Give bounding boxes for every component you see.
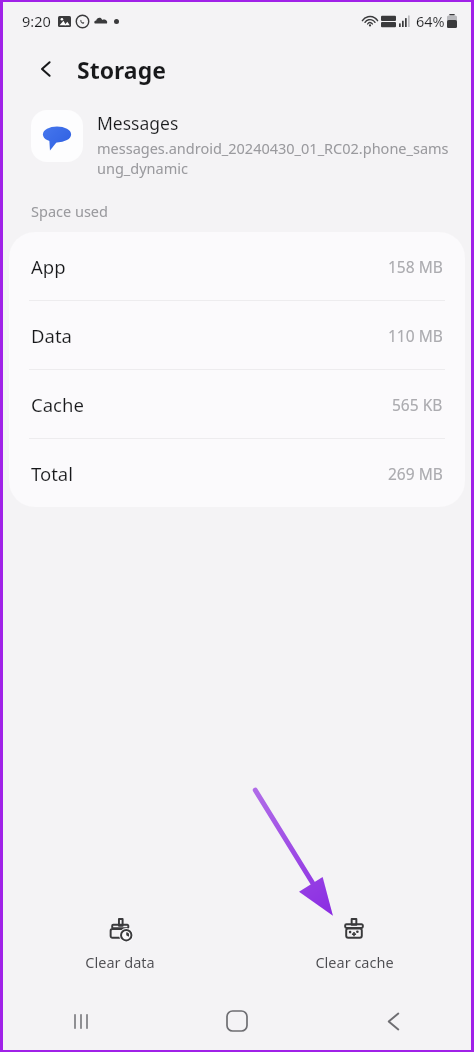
staticText: Storage — [77, 54, 166, 85]
button[interactable]: Back — [31, 54, 61, 84]
staticText: 565 KB — [392, 394, 443, 415]
staticText: Total — [31, 461, 74, 486]
staticText: Cache — [31, 392, 84, 417]
button[interactable]: Back — [315, 992, 471, 1050]
staticText: Space used — [31, 201, 108, 221]
button[interactable]: Cache — [9, 370, 465, 438]
button[interactable]: Recent apps — [3, 992, 159, 1050]
button[interactable]: Clear data — [3, 896, 237, 992]
staticText: Data — [31, 323, 72, 348]
staticText: Clear data — [85, 952, 155, 972]
staticText: 110 MB — [388, 325, 443, 346]
staticText: 158 MB — [388, 256, 443, 277]
button[interactable]: Home — [159, 992, 315, 1050]
button[interactable]: Total — [9, 439, 465, 507]
staticText: Clear cache — [315, 952, 394, 972]
button[interactable]: Data — [9, 301, 465, 369]
staticText: messages.android_20240430_01_RC02.phone_… — [97, 138, 449, 179]
staticText: App — [31, 254, 66, 279]
staticText: 269 MB — [388, 463, 443, 484]
button[interactable]: App — [9, 232, 465, 300]
staticText: Messages — [97, 111, 179, 135]
staticText: 9:20 — [22, 11, 51, 31]
staticText: 64% — [416, 11, 445, 31]
button[interactable]: Clear cache — [237, 896, 471, 992]
